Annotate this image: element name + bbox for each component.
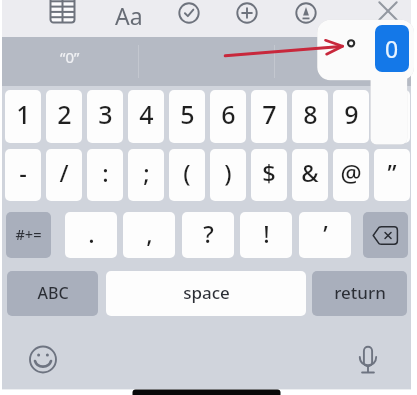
button[interactable]: ! [240,212,292,258]
staticText: ! [263,218,270,250]
staticText: $ [262,157,276,189]
staticText: ” [387,157,397,189]
button[interactable]: ) [210,149,246,201]
button[interactable]: Close [372,0,404,26]
staticText: return [334,281,386,304]
button[interactable]: Aa [108,0,150,26]
button[interactable]: #+= [6,212,51,258]
button[interactable]: - [5,149,41,201]
button[interactable]: : [87,149,123,201]
staticText: 7 [262,97,277,131]
staticText: ) [224,157,232,189]
staticText: 6 [221,97,236,131]
staticText: 4 [139,97,154,131]
button[interactable]: 9 [333,90,369,143]
staticText: & [301,157,319,189]
button[interactable]: Degree sign [335,27,367,60]
staticText: Aa [115,0,143,26]
button[interactable]: & [292,149,328,201]
button[interactable]: . [65,212,117,258]
button[interactable]: 0 [375,25,409,72]
button[interactable]: 8 [292,90,328,143]
staticText: ( [183,157,191,189]
button[interactable]: / [46,149,82,201]
button[interactable]: return [312,271,407,316]
button[interactable]: $ [251,149,287,201]
button[interactable]: ’ [299,212,351,258]
staticText: 2 [57,97,72,131]
staticText: : [102,157,109,189]
staticText: 1 [16,97,31,131]
staticText: - [19,157,27,189]
staticText: 3 [98,97,113,131]
button[interactable]: Backspace [363,212,408,258]
button[interactable]: @ [333,149,369,201]
staticText: space [183,281,230,304]
button[interactable]: 5 [169,90,205,143]
staticText: . [88,218,95,250]
button[interactable]: 3 [87,90,123,143]
button[interactable] [139,37,275,86]
button[interactable]: 0 [374,90,410,143]
staticText: ; [143,157,150,189]
staticText: “0” [60,47,80,67]
button[interactable]: Dictation [351,343,385,377]
staticText: ABC [37,282,69,304]
staticText: 9 [344,97,359,131]
button[interactable]: ” [374,149,410,201]
button[interactable]: Markup [292,0,320,27]
button[interactable]: ; [128,149,164,201]
staticText: ? [203,218,214,250]
staticText: 5 [180,97,195,131]
button[interactable]: “0” [2,37,138,86]
staticText: 0 [385,33,399,64]
button[interactable]: 2 [46,90,82,143]
staticText: 8 [303,97,318,131]
staticText: / [59,157,69,189]
button[interactable]: 6 [210,90,246,143]
button[interactable]: ( [169,149,205,201]
button[interactable]: ABC [7,271,98,316]
button[interactable]: , [123,212,175,258]
button[interactable]: Add [233,0,261,27]
button[interactable]: 4 [128,90,164,143]
staticText: ’ [323,218,328,250]
staticText: @ [340,157,362,189]
button[interactable]: 1 [5,90,41,143]
button[interactable] [275,37,411,86]
staticText: , [146,218,153,250]
button[interactable]: 7 [251,90,287,143]
button[interactable]: ? [182,212,234,258]
button[interactable]: Emoji keyboard [26,343,60,377]
button[interactable]: Table [47,0,79,28]
button[interactable]: Done [175,0,203,27]
staticText: #+= [15,224,42,244]
button[interactable]: space [106,271,306,316]
